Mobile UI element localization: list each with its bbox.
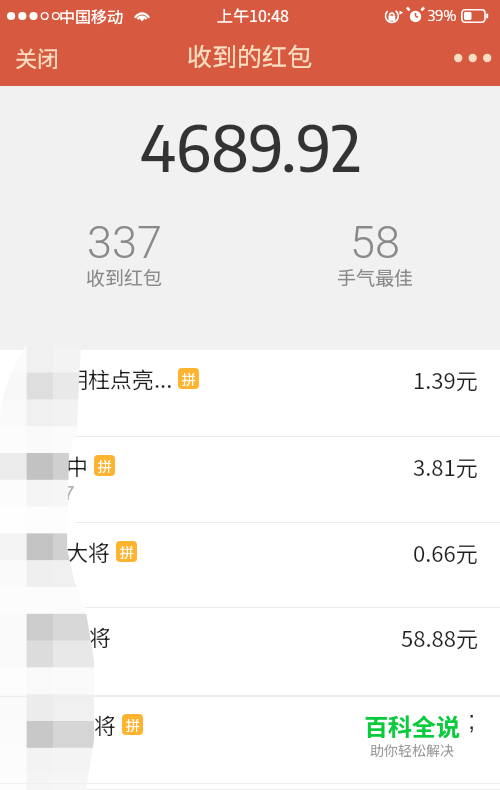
staticText: 4689.92	[140, 107, 361, 186]
staticText: 0.66元	[413, 536, 478, 568]
staticText: 3.81元	[413, 450, 478, 482]
button[interactable]: 明柱点亮...	[0, 350, 500, 437]
button[interactable]: 明将	[0, 696, 500, 790]
staticText: 明柱点亮...	[66, 362, 173, 394]
staticText: 1.39元	[413, 363, 478, 395]
staticText: 关闭	[15, 41, 60, 71]
staticText: 39%	[428, 6, 457, 25]
staticText: 中国移动	[59, 4, 124, 27]
staticText: ;	[468, 705, 476, 734]
staticText: 大将	[66, 535, 111, 567]
button[interactable]: 大将	[0, 523, 500, 608]
staticText: 7	[63, 481, 75, 504]
staticText: 58	[350, 216, 400, 269]
button[interactable]: 中	[0, 437, 500, 523]
staticText: 58.88元	[401, 621, 478, 653]
staticText: 拼	[120, 542, 134, 562]
staticText: 明将	[67, 620, 112, 652]
staticText: 上午10:48	[217, 3, 289, 26]
staticText: 拼	[126, 715, 140, 735]
staticText: 助你轻松解决	[370, 740, 454, 760]
staticText: 百科全说	[364, 708, 460, 743]
button[interactable]: More options	[438, 38, 500, 78]
staticText: 收到的红包	[187, 37, 313, 73]
staticText: 中	[66, 449, 89, 481]
staticText: 手气最佳	[337, 263, 414, 291]
staticText: 拼	[98, 456, 112, 476]
staticText: 337	[87, 216, 162, 269]
button[interactable]: 百科全说	[0, 696, 500, 790]
button[interactable]: 明将	[0, 608, 500, 696]
staticText: 明将	[72, 708, 117, 740]
button[interactable]: 关闭	[0, 30, 75, 86]
staticText: 收到红包	[86, 263, 163, 291]
staticText: 拼	[182, 369, 196, 389]
